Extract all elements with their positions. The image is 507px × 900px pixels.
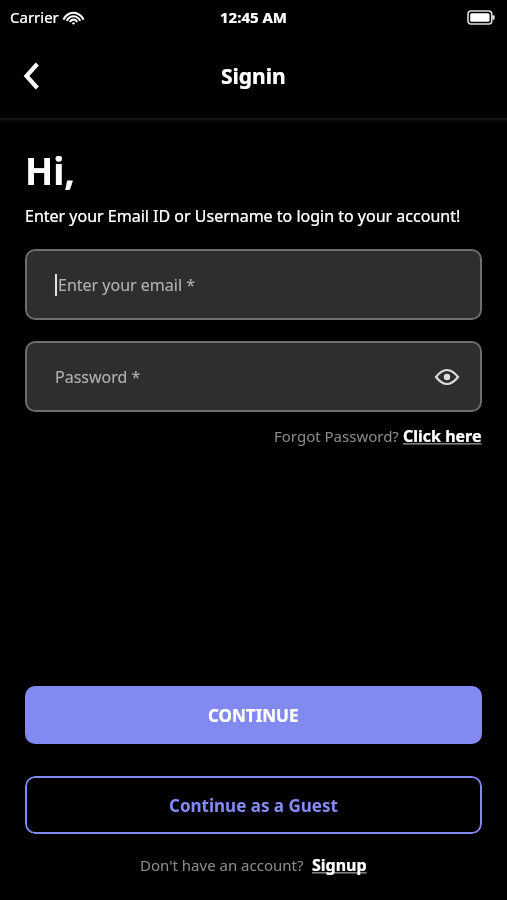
- staticText: Signup: [312, 854, 367, 876]
- staticText: Continue as a Guest: [169, 794, 338, 817]
- button[interactable]: Signup: [312, 854, 367, 876]
- button[interactable]: Back: [10, 54, 54, 98]
- button[interactable]: Continue as a Guest: [25, 776, 482, 834]
- staticText: Forgot Password?: [274, 426, 403, 446]
- staticText: Don't have an account?: [140, 855, 312, 875]
- staticText: 12:45 AM: [220, 7, 287, 27]
- button[interactable]: Password *: [25, 341, 482, 412]
- button[interactable]: Enter your email *: [25, 249, 482, 320]
- staticText: Password *: [55, 366, 141, 388]
- button[interactable]: Click here: [403, 425, 482, 447]
- staticText: CONTINUE: [208, 704, 299, 727]
- staticText: Carrier: [10, 7, 59, 27]
- staticText: Signin: [221, 62, 286, 91]
- staticText: Click here: [403, 425, 482, 447]
- button[interactable]: Show password: [428, 358, 466, 396]
- staticText: Enter your email *: [58, 274, 196, 296]
- button[interactable]: CONTINUE: [25, 686, 482, 744]
- staticText: Enter your Email ID or Username to login…: [25, 205, 461, 227]
- staticText: Hi,: [25, 145, 75, 195]
